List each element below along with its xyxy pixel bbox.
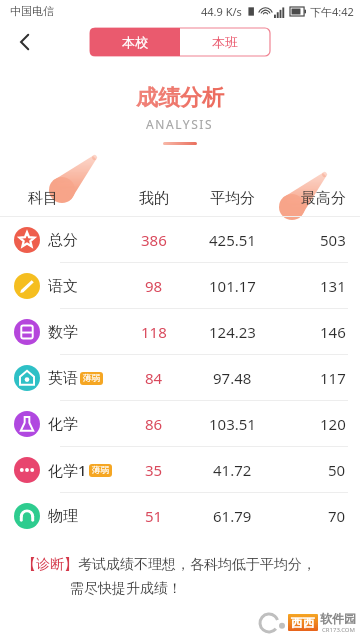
button[interactable]: 本班 xyxy=(180,28,270,56)
staticText: 98 xyxy=(145,276,163,296)
staticText: 86 xyxy=(145,414,163,434)
staticText: 中国电信 xyxy=(10,4,54,18)
staticText: 本校 xyxy=(122,34,148,50)
staticText: 131 xyxy=(320,276,346,296)
button[interactable]: 本校 xyxy=(90,28,180,56)
staticText: 425.51 xyxy=(209,230,256,250)
staticText: 平均分 xyxy=(210,189,255,208)
staticText: 薄弱 xyxy=(83,373,100,384)
staticText: 科目 xyxy=(28,189,58,208)
staticText: 物理 xyxy=(48,507,78,526)
staticText: 70 xyxy=(328,506,346,526)
staticText: 101.17 xyxy=(209,276,256,296)
staticText: 总分 xyxy=(48,231,78,250)
staticText: 英语 xyxy=(48,369,78,388)
staticText: 146 xyxy=(320,322,346,342)
staticText: 103.51 xyxy=(209,414,256,434)
button[interactable]: 化学 xyxy=(0,401,360,446)
staticText: 84 xyxy=(145,368,163,388)
staticText: 最高分 xyxy=(301,189,346,208)
staticText: 120 xyxy=(320,414,346,434)
staticText: 50 xyxy=(328,460,346,480)
staticText: 118 xyxy=(141,322,167,342)
button[interactable]: Back xyxy=(8,25,42,59)
staticText: 成绩分析 xyxy=(136,84,224,112)
button[interactable]: 化学1 xyxy=(0,447,360,492)
staticText: 下午4:42 xyxy=(310,4,354,19)
staticText: ANALYSIS xyxy=(146,116,214,132)
staticText: 语文 xyxy=(48,277,78,296)
staticText: 需尽快提升成绩！ xyxy=(70,580,182,598)
staticText: 44.9 K/s xyxy=(201,4,242,19)
staticText: 51 xyxy=(145,506,163,526)
staticText: 503 xyxy=(320,230,346,250)
staticText: 117 xyxy=(320,368,346,388)
staticText: 软件园 xyxy=(320,611,356,626)
staticText: 124.23 xyxy=(209,322,256,342)
staticText: 35 xyxy=(145,460,163,480)
staticText: 我的 xyxy=(139,189,169,208)
staticText: 386 xyxy=(141,230,167,250)
staticText: 化学1 xyxy=(48,460,87,480)
staticText: 薄弱 xyxy=(92,465,109,476)
staticText: 西西 xyxy=(291,615,315,630)
button[interactable]: 数学 xyxy=(0,309,360,354)
staticText: 41.72 xyxy=(213,460,252,480)
button[interactable]: 总分 xyxy=(0,217,360,262)
staticText: 数学 xyxy=(48,323,78,342)
button[interactable]: 物理 xyxy=(0,493,360,538)
staticText: 97.48 xyxy=(213,368,252,388)
staticText: 本班 xyxy=(212,34,238,50)
staticText: CR173.COM xyxy=(322,626,355,634)
button[interactable]: 英语 xyxy=(0,355,360,400)
staticText: 61.79 xyxy=(213,506,252,526)
staticText: 考试成绩不理想，各科均低于平均分， xyxy=(78,556,316,574)
button[interactable]: 语文 xyxy=(0,263,360,308)
staticText: 【诊断】 xyxy=(22,556,78,574)
staticText: 化学 xyxy=(48,415,78,434)
